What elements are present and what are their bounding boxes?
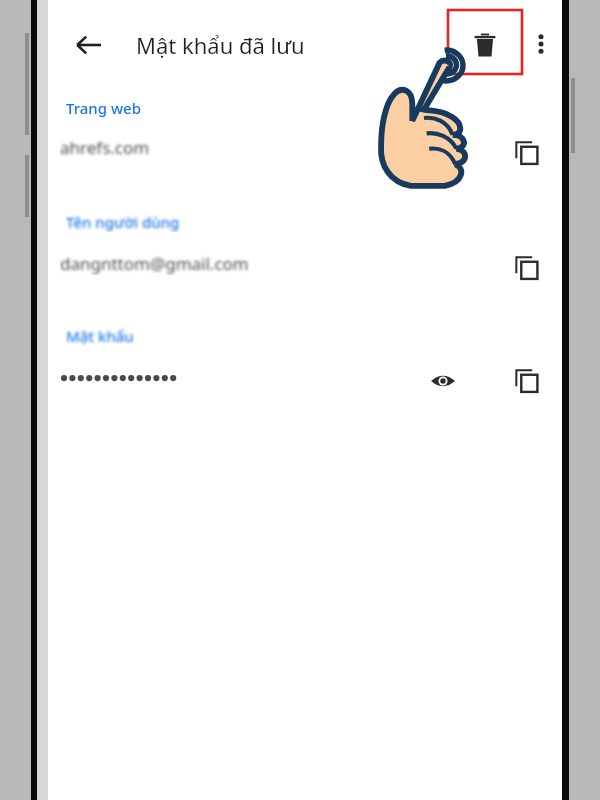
staticText: Tên người dùng <box>66 212 180 232</box>
staticText: Mật khẩu <box>66 326 134 346</box>
staticText: Trang web <box>66 98 141 118</box>
staticText: dangnttom@gmail.com <box>60 252 249 275</box>
button[interactable]: Copy website <box>504 130 550 176</box>
button[interactable]: Show password <box>420 358 466 404</box>
button[interactable]: Copy password <box>504 358 550 404</box>
button[interactable]: Back <box>66 22 112 68</box>
button[interactable]: Delete <box>462 22 508 68</box>
staticText: Mật khẩu đã lưu <box>136 30 305 60</box>
button[interactable]: More options <box>519 22 563 66</box>
staticText: ahrefs.com <box>60 136 150 159</box>
button[interactable]: Copy username <box>504 245 550 291</box>
